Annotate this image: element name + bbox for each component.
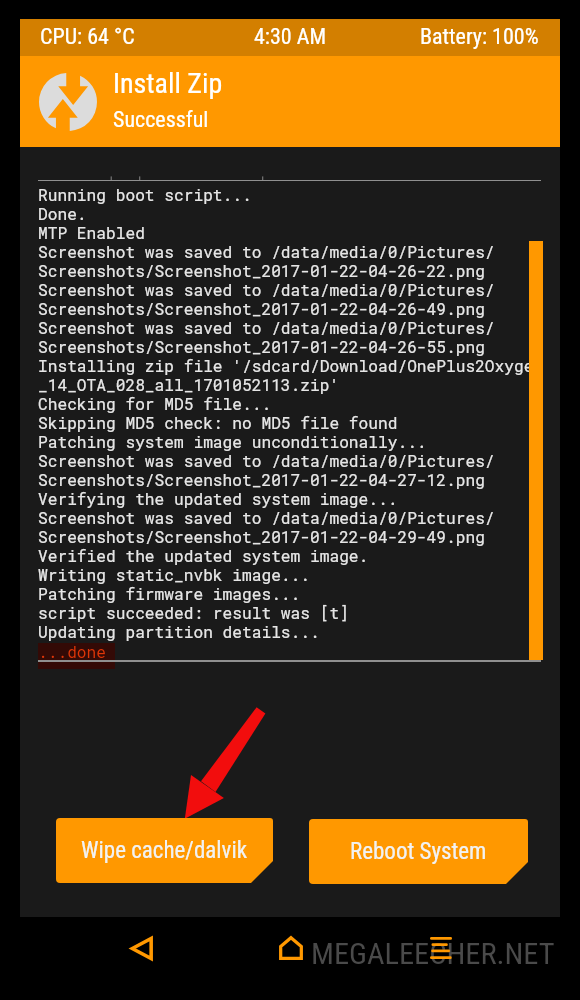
staticText: ...done [38,641,106,662]
staticText: Screenshot was saved to /data/media/0/Pi… [38,279,495,300]
staticText: Verified the updated system image. [38,545,369,566]
staticText: Skipping MD5 check: no MD5 file found [38,412,398,433]
staticText: Screenshot was saved to /data/media/0/Pi… [38,241,495,262]
staticText: Screenshots/Screenshot_2017-01-22-04-26-… [38,336,485,357]
staticText: MEGALEECHER.NET [311,936,555,972]
staticText: Wipe cache/dalvik [81,837,248,864]
button[interactable]: Reboot System [309,819,528,884]
staticText: Screenshot was saved to /data/media/0/Pi… [38,317,495,338]
staticText: Updating partition details... [38,621,320,642]
staticText: Patching system image unconditionally... [38,431,427,452]
staticText: Screenshot was saved to /data/media/0/Pi… [38,450,495,471]
staticText: Battery: 100% [420,24,539,50]
staticText: Install Zip [113,67,223,100]
button[interactable]: Home [263,920,319,976]
button[interactable]: Wipe cache/dalvik [56,818,273,883]
staticText: Screenshots/Screenshot_2017-01-22-04-29-… [38,526,485,547]
staticText: 4:30 AM [254,24,327,50]
staticText: Verifying the updated system image... [38,488,398,509]
staticText: Successful [113,107,209,133]
staticText: Running boot script... [38,184,252,205]
staticText: Screenshot was saved to /data/media/0/Pi… [38,507,495,528]
button[interactable]: Back [113,920,169,976]
button[interactable]: Recent apps [413,920,469,976]
staticText: Installing zip file '/sdcard/Download/On… [38,355,544,376]
staticText: Screenshots/Screenshot_2017-01-22-04-27-… [38,469,485,490]
staticText: Checking for MD5 file... [38,393,272,414]
staticText: Screenshots/Screenshot_2017-01-22-04-26-… [38,260,485,281]
staticText: _14_OTA_028_all_1701052113.zip' [38,374,340,395]
staticText: Writing static_nvbk image... [38,564,310,585]
staticText: MTP Enabled [38,222,145,243]
staticText: Screenshots/Screenshot_2017-01-22-04-26-… [38,298,485,319]
staticText: Done. [38,203,87,224]
staticText: Reboot System [350,838,487,865]
staticText: script succeeded: result was [t] [38,602,349,623]
staticText: CPU: 64 °C [40,24,135,50]
staticText: Patching firmware images... [38,583,301,604]
